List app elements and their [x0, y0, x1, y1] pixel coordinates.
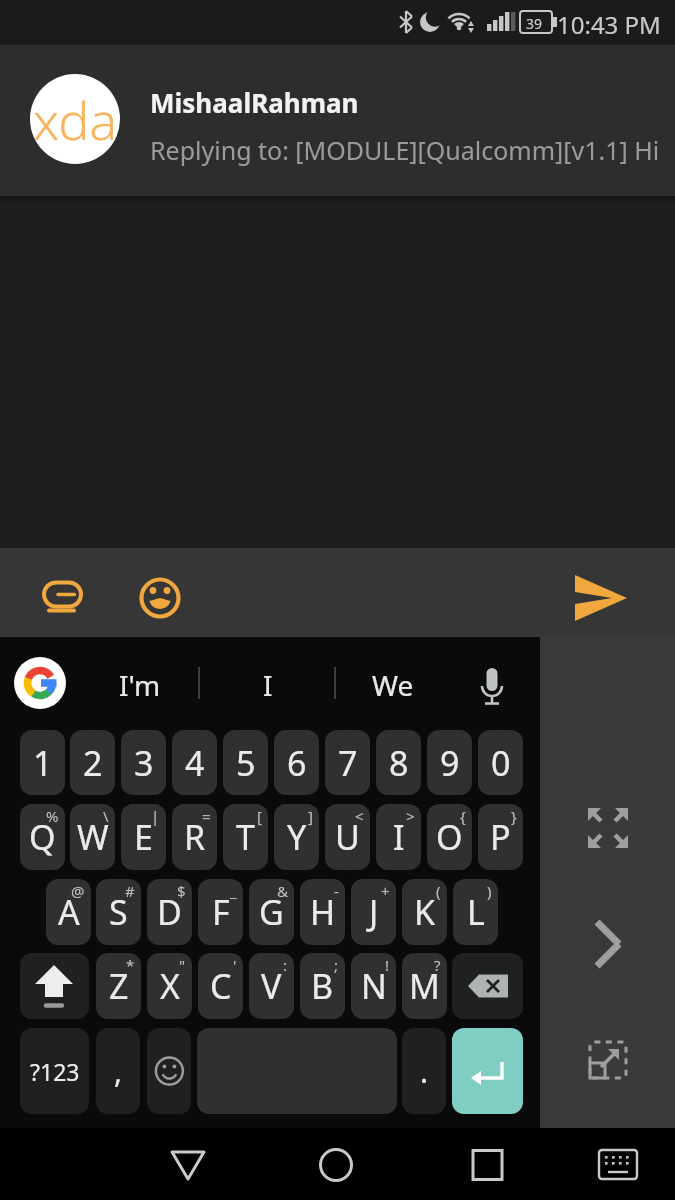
- staticText: #: [125, 881, 135, 901]
- button[interactable]: R: [172, 804, 217, 870]
- button[interactable]: [452, 1028, 523, 1114]
- button[interactable]: 0: [478, 730, 523, 795]
- button[interactable]: [565, 560, 645, 636]
- staticText: X: [160, 963, 180, 1009]
- button[interactable]: 5: [223, 730, 268, 795]
- button[interactable]: J: [351, 879, 396, 945]
- button[interactable]: [158, 1138, 218, 1193]
- button[interactable]: I: [376, 804, 421, 870]
- button[interactable]: 2: [70, 730, 115, 795]
- button[interactable]: L: [453, 879, 498, 945]
- button[interactable]: [465, 655, 521, 711]
- button[interactable]: [147, 1028, 191, 1114]
- button[interactable]: [452, 953, 523, 1019]
- staticText: I'm: [119, 666, 161, 704]
- button[interactable]: F: [198, 879, 243, 945]
- staticText: ): [487, 881, 492, 901]
- button[interactable]: E: [121, 804, 166, 870]
- button[interactable]: V: [249, 953, 294, 1019]
- staticText: Q: [29, 814, 56, 860]
- button[interactable]: 1: [20, 730, 65, 795]
- button[interactable]: P: [478, 804, 523, 870]
- staticText: \: [103, 806, 109, 826]
- staticText: &: [277, 881, 288, 901]
- button[interactable]: [355, 655, 440, 711]
- button[interactable]: M: [402, 953, 447, 1019]
- staticText: Y: [287, 814, 307, 860]
- staticText: %: [46, 806, 59, 826]
- staticText: ?: [434, 955, 441, 975]
- button[interactable]: K: [402, 879, 447, 945]
- staticText: D: [157, 889, 182, 935]
- staticText: _: [230, 881, 237, 901]
- staticText: N: [361, 963, 387, 1009]
- button[interactable]: xda: [30, 74, 120, 164]
- staticText: V: [261, 963, 282, 1009]
- staticText: <: [355, 806, 364, 826]
- staticText: A: [58, 889, 80, 935]
- button[interactable]: 3: [121, 730, 166, 795]
- button[interactable]: [95, 655, 180, 711]
- button[interactable]: [575, 795, 641, 861]
- button[interactable]: H: [300, 879, 345, 945]
- staticText: =: [202, 806, 211, 826]
- button[interactable]: X: [147, 953, 192, 1019]
- staticText: O: [436, 814, 463, 860]
- staticText: |: [151, 806, 160, 826]
- button[interactable]: Z: [96, 953, 141, 1019]
- button[interactable]: N: [351, 953, 396, 1019]
- staticText: R: [184, 814, 206, 860]
- staticText: E: [134, 814, 153, 860]
- button[interactable]: 6: [274, 730, 319, 795]
- button[interactable]: ,: [96, 1028, 140, 1114]
- button[interactable]: [20, 953, 89, 1019]
- button[interactable]: [130, 560, 190, 636]
- staticText: 8: [389, 740, 409, 786]
- staticText: W: [77, 814, 109, 860]
- staticText: 9: [440, 740, 460, 786]
- button[interactable]: 7: [325, 730, 370, 795]
- button[interactable]: 9: [427, 730, 472, 795]
- button[interactable]: [306, 1138, 366, 1193]
- button[interactable]: 4: [172, 730, 217, 795]
- button[interactable]: A: [46, 879, 91, 945]
- button[interactable]: [575, 911, 641, 977]
- staticText: 0: [491, 740, 511, 786]
- staticText: {: [460, 806, 466, 826]
- button[interactable]: Y: [274, 804, 319, 870]
- staticText: K: [414, 889, 436, 935]
- staticText: @: [71, 881, 85, 901]
- button[interactable]: [588, 1138, 648, 1193]
- button[interactable]: O: [427, 804, 472, 870]
- button[interactable]: [197, 1028, 397, 1114]
- button[interactable]: [30, 560, 85, 636]
- staticText: !: [385, 955, 390, 975]
- staticText: $: [177, 881, 186, 901]
- staticText: }: [511, 806, 517, 826]
- button[interactable]: W: [70, 804, 115, 870]
- button[interactable]: ?123: [20, 1028, 89, 1114]
- button[interactable]: [12, 655, 68, 711]
- button[interactable]: U: [325, 804, 370, 870]
- button[interactable]: D: [147, 879, 192, 945]
- button[interactable]: [457, 1138, 517, 1193]
- button[interactable]: [575, 1027, 641, 1093]
- staticText: I: [263, 666, 273, 704]
- staticText: (: [436, 881, 441, 901]
- staticText: 6: [287, 740, 307, 786]
- button[interactable]: S: [96, 879, 141, 945]
- button[interactable]: B: [300, 953, 345, 1019]
- button[interactable]: T: [223, 804, 268, 870]
- button[interactable]: Q: [20, 804, 65, 870]
- staticText: 7: [338, 740, 358, 786]
- staticText: I: [393, 814, 405, 860]
- button[interactable]: 8: [376, 730, 421, 795]
- button[interactable]: .: [402, 1028, 446, 1114]
- staticText: F: [212, 889, 230, 935]
- staticText: U: [335, 814, 360, 860]
- staticText: B: [311, 963, 334, 1009]
- button[interactable]: C: [198, 953, 243, 1019]
- button[interactable]: [230, 655, 305, 711]
- staticText: ]: [308, 806, 313, 826]
- button[interactable]: G: [249, 879, 294, 945]
